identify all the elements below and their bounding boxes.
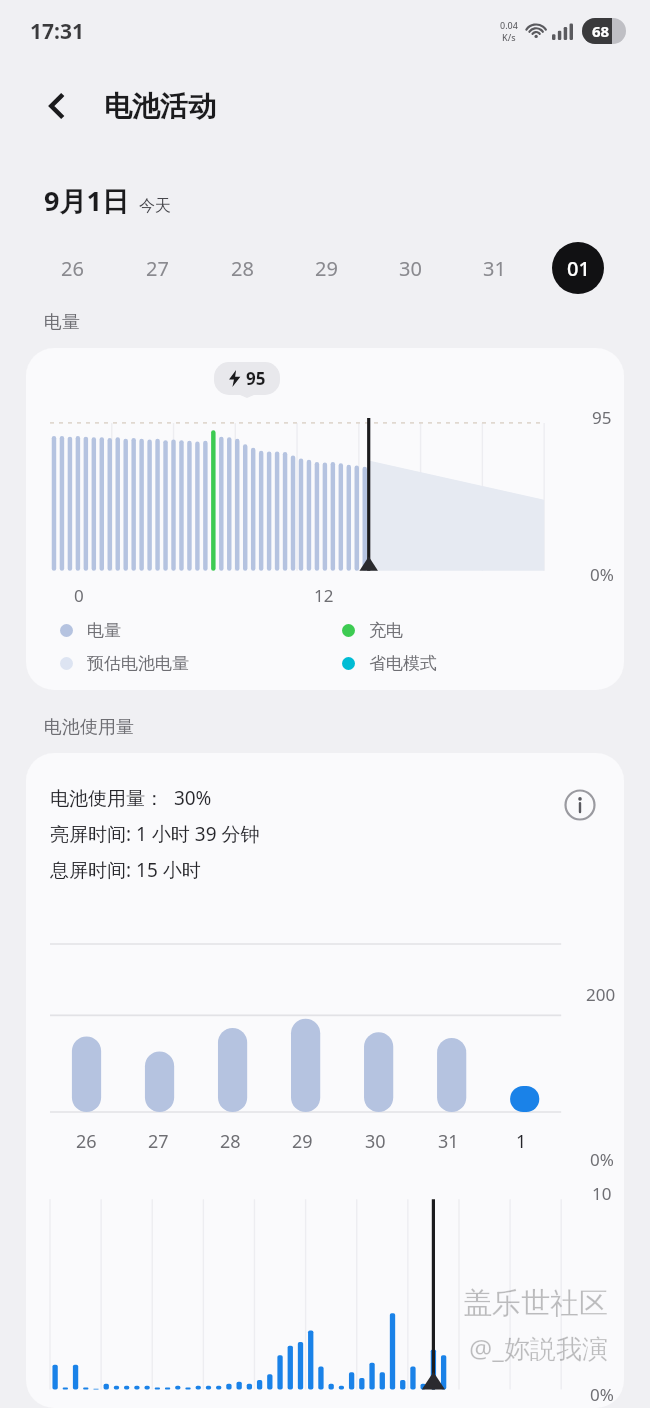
button[interactable]: 31 [452, 241, 536, 295]
staticText: K/s [502, 31, 516, 43]
staticText: 95 [592, 406, 612, 429]
staticText: 27 [148, 1129, 169, 1154]
staticText: 01 [567, 255, 590, 282]
staticText: 95 [246, 367, 266, 390]
staticText: 预估电池电量 [87, 653, 189, 674]
staticText: 26 [76, 1129, 97, 1154]
staticText: 0% [590, 1148, 614, 1171]
staticText: 26 [61, 255, 84, 282]
button[interactable]: 95 [26, 348, 624, 690]
staticText: 0 [74, 584, 84, 607]
staticText: 0.04 [500, 19, 518, 31]
button[interactable]: 27 [115, 241, 200, 295]
staticText: 28 [231, 255, 254, 282]
staticText: 电池使用量： 30% [50, 785, 212, 811]
staticText: 0% [590, 1383, 614, 1406]
staticText: 17:31 [30, 17, 84, 46]
staticText: 27 [146, 255, 169, 282]
staticText: @_妳説我演 [469, 1330, 608, 1366]
staticText: 68 [592, 21, 610, 41]
button[interactable]: 30 [368, 241, 452, 295]
staticText: 29 [315, 255, 338, 282]
staticText: 28 [220, 1129, 241, 1154]
button[interactable]: 01 [552, 242, 604, 294]
button[interactable]: 28 [200, 241, 284, 295]
staticText: 12 [314, 584, 334, 607]
staticText: 盖乐世社区 [463, 1285, 608, 1322]
staticText: 息屏时间: 15 小时 [50, 857, 201, 883]
button[interactable]: 信息 [562, 787, 598, 823]
staticText: 电量 [87, 620, 121, 641]
staticText: 200 [586, 983, 616, 1006]
staticText: 31 [438, 1129, 459, 1154]
staticText: 9月1日 [44, 182, 129, 219]
staticText: 电池活动 [104, 89, 216, 124]
staticText: 电量 [44, 311, 80, 334]
staticText: 充电 [369, 620, 403, 641]
staticText: 29 [292, 1129, 313, 1154]
staticText: 今天 [139, 196, 171, 216]
button[interactable]: 29 [284, 241, 368, 295]
staticText: 亮屏时间: 1 小时 39 分钟 [50, 821, 260, 847]
button[interactable]: 返回 [36, 85, 78, 127]
staticText: 31 [483, 255, 506, 282]
staticText: 30 [399, 255, 422, 282]
button[interactable]: 电池使用量： 30% [26, 753, 624, 1408]
button[interactable]: 26 [30, 241, 115, 295]
staticText: 1 [516, 1129, 527, 1154]
staticText: 电池使用量 [44, 716, 134, 739]
staticText: 10 [592, 1182, 612, 1205]
staticText: 0% [590, 563, 614, 586]
staticText: 30 [365, 1129, 386, 1154]
staticText: 省电模式 [369, 653, 437, 674]
